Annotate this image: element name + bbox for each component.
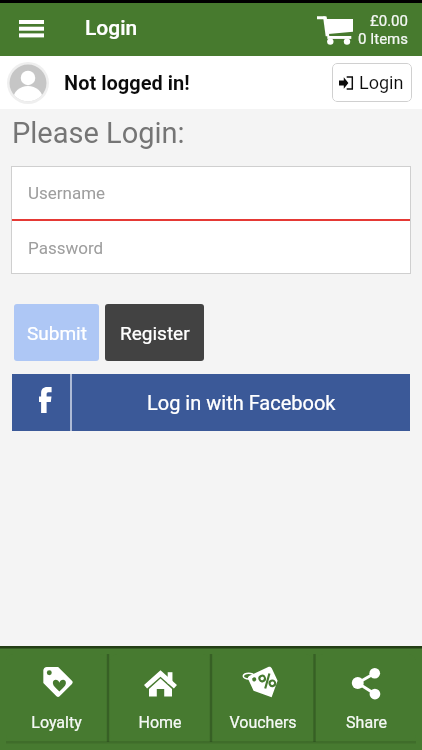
staticText: Home: [138, 713, 182, 732]
button[interactable]: Password: [28, 238, 104, 258]
button[interactable]: Register: [105, 304, 204, 361]
staticText: Not logged in!: [64, 71, 190, 94]
staticText: Submit: [27, 322, 87, 344]
staticText: Log in with Facebook: [147, 391, 336, 414]
staticText: Register: [120, 322, 190, 344]
button[interactable]: Login: [332, 63, 412, 102]
staticText: £0.00: [370, 12, 408, 30]
button[interactable]: Share: [316, 654, 416, 742]
staticText: Loyalty: [31, 713, 82, 732]
staticText: Please Login:: [12, 116, 185, 150]
staticText: Login: [85, 16, 138, 41]
button[interactable]: Menu: [8, 6, 54, 52]
button[interactable]: Home: [110, 654, 210, 742]
button[interactable]: Log in with Facebook: [12, 374, 410, 431]
staticText: Share: [346, 713, 387, 732]
button[interactable]: £0.00: [317, 12, 408, 48]
button[interactable]: Loyalty: [6, 654, 107, 742]
button[interactable]: Submit: [14, 304, 99, 361]
staticText: Vouchers: [229, 713, 297, 732]
button[interactable]: Vouchers: [213, 654, 313, 742]
staticText: Login: [359, 72, 404, 93]
staticText: 0 Items: [358, 30, 408, 48]
button[interactable]: Username: [28, 183, 106, 203]
